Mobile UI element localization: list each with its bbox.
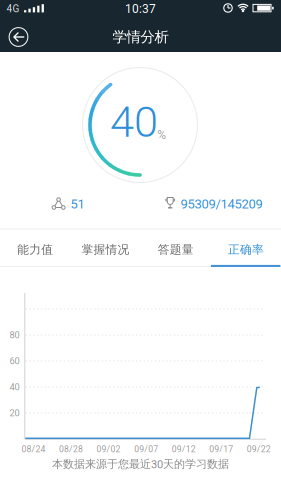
staticText: 95309/145209 <box>180 196 262 212</box>
button[interactable]: 能力值 <box>0 231 70 267</box>
staticText: 40 <box>9 381 19 392</box>
staticText: 60 <box>9 355 19 366</box>
staticText: 10:37 <box>125 2 156 16</box>
staticText: 80 <box>9 329 19 340</box>
staticText: 08/28 <box>59 444 83 454</box>
button[interactable]: 掌握情况 <box>70 231 140 267</box>
button[interactable]: 答题量 <box>140 231 211 267</box>
staticText: 答题量 <box>158 242 194 257</box>
staticText: 掌握情况 <box>81 242 129 257</box>
staticText: 4G <box>6 3 19 15</box>
staticText: 08/24 <box>21 444 45 454</box>
staticText: 09/02 <box>97 444 121 454</box>
staticText: 20 <box>9 407 19 418</box>
staticText: 40 <box>110 97 158 147</box>
staticText: 09/22 <box>247 444 271 454</box>
staticText: 本数据来源于您最近30天的学习数据 <box>52 457 229 471</box>
staticText: % <box>157 128 166 142</box>
staticText: 09/12 <box>172 444 196 454</box>
staticText: 09/07 <box>134 444 158 454</box>
staticText: 09/17 <box>209 444 233 454</box>
staticText: 正确率 <box>228 242 264 257</box>
button[interactable]: 正确率 <box>211 231 281 267</box>
staticText: 能力值 <box>17 242 53 257</box>
staticText: 51 <box>70 196 84 212</box>
staticText: 学情分析 <box>112 28 168 46</box>
button[interactable]: Back <box>3 22 33 52</box>
